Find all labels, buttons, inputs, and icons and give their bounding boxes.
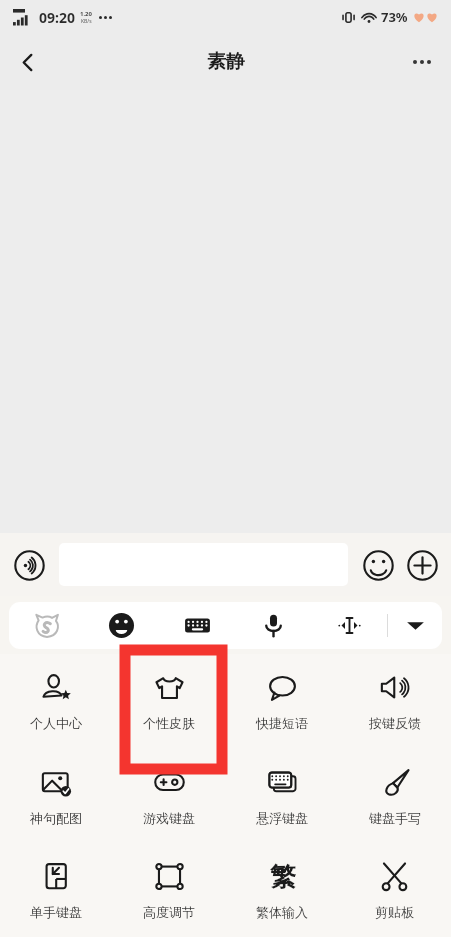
button[interactable]: Voice input (235, 602, 311, 649)
button[interactable]: 繁 (225, 843, 338, 937)
button[interactable]: 高度调节 (112, 843, 225, 937)
staticText: 游戏键盘 (143, 810, 195, 826)
button[interactable]: Expressions (84, 602, 159, 649)
button[interactable]: Emoji (361, 548, 395, 582)
button[interactable]: 个性皮肤 (112, 654, 225, 749)
staticText: 悬浮键盘 (256, 810, 308, 826)
button[interactable]: Sogou input (9, 602, 84, 649)
button[interactable]: 按键反馈 (338, 654, 451, 749)
button[interactable]: 快捷短语 (225, 654, 338, 749)
button[interactable]: 游戏键盘 (112, 749, 225, 843)
button[interactable]: Hide keyboard (388, 602, 442, 649)
staticText: 个性皮肤 (143, 715, 195, 731)
button[interactable]: Cursor control (311, 602, 387, 649)
button[interactable]: 个人中心 (0, 654, 112, 749)
button[interactable]: 剪贴板 (338, 843, 451, 937)
button[interactable]: Voice input (12, 548, 46, 582)
staticText: 繁 (270, 861, 296, 892)
button[interactable]: Back (4, 39, 50, 85)
button[interactable]: More actions (405, 548, 439, 582)
staticText: 1.20 (80, 10, 92, 18)
staticText: 单手键盘 (30, 904, 82, 920)
staticText: 高度调节 (143, 904, 195, 920)
button[interactable]: 键盘手写 (338, 749, 451, 843)
staticText: 繁体输入 (256, 904, 308, 920)
button[interactable]: 单手键盘 (0, 843, 112, 937)
staticText: 73% (381, 8, 408, 26)
staticText: 个人中心 (30, 715, 82, 731)
staticText: 快捷短语 (256, 715, 308, 731)
staticText: 剪贴板 (375, 904, 414, 920)
button[interactable]: 神句配图 (0, 749, 112, 843)
button[interactable]: More options (399, 39, 445, 85)
button[interactable]: 悬浮键盘 (225, 749, 338, 843)
staticText: 素静 (207, 50, 245, 74)
button[interactable]: Keyboard layout (159, 602, 235, 649)
staticText: 按键反馈 (369, 715, 421, 731)
staticText: 09:20 (39, 8, 75, 27)
staticText: 神句配图 (30, 810, 82, 826)
staticText: 键盘手写 (369, 810, 421, 826)
staticText: KB/s (81, 18, 92, 25)
